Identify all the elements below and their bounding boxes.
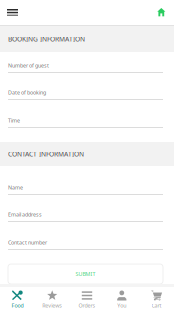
button[interactable]: Cart bbox=[139, 287, 174, 310]
staticText: Food bbox=[11, 302, 23, 309]
staticText: Time bbox=[8, 117, 20, 124]
button[interactable]: Food bbox=[0, 287, 35, 310]
button[interactable]: Orders bbox=[70, 287, 104, 310]
staticText: Orders bbox=[78, 302, 95, 309]
staticText: Number of guest bbox=[8, 62, 49, 69]
staticText: BOOKING INFORMATION bbox=[8, 35, 85, 43]
button[interactable]: SUBMIT bbox=[8, 264, 163, 284]
staticText: Reviews bbox=[42, 302, 62, 309]
button[interactable]: Reviews bbox=[35, 287, 70, 310]
button[interactable]: Menu bbox=[0, 0, 30, 25]
staticText: Contact number bbox=[8, 239, 47, 246]
staticText: CONTACT INFORMATION bbox=[8, 150, 84, 158]
button[interactable]: You bbox=[104, 287, 139, 310]
staticText: You bbox=[117, 302, 126, 309]
staticText: SUBMIT bbox=[75, 270, 95, 278]
staticText: Cart bbox=[152, 302, 162, 309]
staticText: Name bbox=[8, 184, 23, 191]
button[interactable]: Home bbox=[144, 0, 174, 25]
staticText: Date of booking bbox=[8, 89, 46, 96]
staticText: Email address bbox=[8, 211, 42, 218]
